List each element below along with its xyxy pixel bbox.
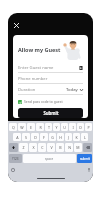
button[interactable]: X bbox=[29, 143, 37, 152]
button[interactable]: Emoji bbox=[9, 166, 16, 173]
staticText: F bbox=[43, 135, 45, 140]
button[interactable]: M bbox=[74, 143, 82, 152]
staticText: U bbox=[63, 125, 66, 130]
button[interactable]: K bbox=[73, 133, 80, 141]
staticText: T bbox=[48, 125, 50, 130]
staticText: J bbox=[68, 135, 69, 140]
button[interactable]: B bbox=[56, 143, 64, 152]
button[interactable]: D bbox=[31, 133, 39, 141]
staticText: B bbox=[59, 145, 62, 150]
button[interactable]: O bbox=[77, 123, 84, 131]
button[interactable]: H bbox=[57, 133, 64, 141]
button[interactable]: T bbox=[45, 123, 52, 131]
staticText: I bbox=[72, 125, 74, 130]
staticText: S bbox=[25, 135, 27, 140]
staticText: V bbox=[50, 145, 53, 150]
button[interactable] bbox=[83, 143, 92, 152]
button[interactable]: Z bbox=[19, 143, 28, 152]
button[interactable]: E bbox=[27, 123, 35, 131]
button[interactable]: W bbox=[18, 123, 26, 131]
button[interactable]: N bbox=[65, 143, 73, 152]
button[interactable]: space bbox=[23, 154, 76, 163]
staticText: Today bbox=[66, 87, 78, 93]
staticText: K bbox=[75, 135, 78, 140]
staticText: Allow my Guest bbox=[18, 46, 63, 53]
staticText: L bbox=[84, 135, 86, 140]
button[interactable]: ?123 bbox=[9, 154, 22, 163]
button[interactable]: Enter Guest name bbox=[18, 62, 83, 73]
staticText: R bbox=[39, 125, 42, 130]
staticText: space bbox=[45, 157, 54, 161]
staticText: Z bbox=[22, 145, 25, 150]
button[interactable]: G bbox=[49, 133, 56, 141]
staticText: D bbox=[34, 135, 37, 140]
button[interactable]: V bbox=[47, 143, 55, 152]
staticText: P bbox=[87, 125, 90, 130]
button[interactable]: J bbox=[65, 133, 72, 141]
staticText: E bbox=[30, 125, 32, 130]
button[interactable]: S bbox=[22, 133, 30, 141]
staticText: Q bbox=[12, 125, 15, 130]
button[interactable]: Voice input bbox=[85, 166, 92, 173]
button[interactable] bbox=[9, 143, 18, 152]
staticText: Submit bbox=[43, 110, 59, 116]
button[interactable]: Duration bbox=[18, 84, 83, 95]
staticText: Duration bbox=[18, 87, 66, 93]
button[interactable]: P bbox=[85, 123, 92, 131]
staticText: Phone number bbox=[18, 76, 83, 82]
staticText: Y bbox=[55, 125, 58, 130]
button[interactable]: Submit bbox=[18, 108, 83, 118]
button[interactable]: I bbox=[69, 123, 76, 131]
button[interactable]: Phone number bbox=[18, 73, 83, 84]
staticText: H bbox=[59, 135, 62, 140]
staticText: C bbox=[41, 145, 44, 150]
button[interactable]: R bbox=[36, 123, 44, 131]
button[interactable]: Close bbox=[12, 21, 20, 29]
staticText: submit bbox=[80, 157, 90, 161]
staticText: ?123 bbox=[12, 157, 19, 161]
staticText: W bbox=[20, 125, 24, 130]
button[interactable]: L bbox=[81, 133, 88, 141]
button[interactable]: submit bbox=[77, 154, 92, 163]
staticText: X bbox=[32, 145, 35, 150]
button[interactable]: Y bbox=[53, 123, 60, 131]
button[interactable]: C bbox=[38, 143, 46, 152]
button[interactable]: A bbox=[13, 133, 21, 141]
staticText: N bbox=[68, 145, 71, 150]
button[interactable]: Q bbox=[9, 123, 17, 131]
staticText: M bbox=[76, 145, 80, 150]
staticText: Enter Guest name bbox=[18, 65, 79, 71]
staticText: G bbox=[51, 135, 54, 140]
staticText: Send pass code to guest bbox=[24, 99, 63, 104]
button[interactable]: Send pass code to guest bbox=[18, 98, 83, 105]
button[interactable]: F bbox=[40, 133, 48, 141]
button[interactable]: U bbox=[61, 123, 68, 131]
staticText: O bbox=[79, 125, 82, 130]
staticText: A bbox=[16, 135, 19, 140]
